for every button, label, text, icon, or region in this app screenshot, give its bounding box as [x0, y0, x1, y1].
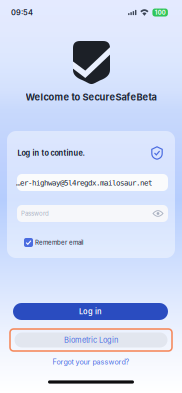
staticText: 09:54 — [11, 8, 33, 17]
staticText: Log in — [79, 307, 102, 316]
staticText: Password — [21, 210, 49, 217]
staticText: Biometric Login — [64, 335, 118, 344]
staticText: Remember email — [35, 239, 83, 246]
button[interactable]: Biometric Login — [10, 329, 172, 351]
staticText: Log in to continue. — [17, 149, 84, 157]
button[interactable]: Forgot your password? — [46, 355, 136, 369]
button[interactable]: Remember email — [24, 236, 84, 248]
staticText: Welcome to SecureSafeBeta — [25, 91, 156, 103]
staticText: Forgot your password? — [52, 358, 129, 366]
staticText: …er-highway@5l4regdx.mailosaur.net — [16, 179, 152, 187]
staticText: 100 — [155, 9, 166, 16]
button[interactable]: Log in — [13, 303, 168, 320]
